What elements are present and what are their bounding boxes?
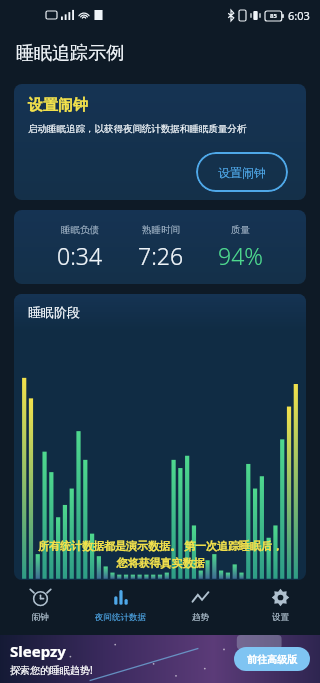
button[interactable]: Sleepzy: [0, 635, 320, 683]
staticText: 睡眠追踪示例: [16, 42, 124, 65]
staticText: 熟睡时间: [142, 224, 180, 236]
staticText: 所有统计数据都是演示数据。 第一次追踪睡眠后， 您将获得真实数据: [38, 538, 283, 570]
button[interactable]: 前往高级版: [234, 647, 310, 671]
staticText: 趋势: [192, 612, 209, 623]
staticText: 设置闹钟: [28, 96, 88, 115]
staticText: 质量: [231, 224, 250, 236]
button[interactable]: 闹钟: [0, 580, 80, 635]
staticText: Sleepzy: [10, 641, 66, 661]
staticText: 设置闹钟: [218, 165, 266, 180]
staticText: 探索您的睡眠趋势!: [10, 663, 93, 677]
staticText: 6:03: [288, 8, 310, 23]
staticText: 0:34: [57, 240, 103, 271]
staticText: 设置: [272, 612, 289, 623]
staticText: 85: [270, 12, 277, 20]
button[interactable]: 睡眠负债: [14, 210, 306, 284]
staticText: 睡眠阶段: [28, 304, 80, 320]
button[interactable]: 设置: [240, 580, 320, 635]
staticText: 94%: [218, 240, 263, 271]
button[interactable]: 睡眠阶段: [14, 294, 306, 580]
staticText: 夜间统计数据: [95, 612, 146, 623]
staticText: 7:26: [138, 240, 184, 271]
button[interactable]: 夜间统计数据: [80, 580, 160, 635]
staticText: 前往高级版: [247, 653, 297, 666]
staticText: 启动睡眠追踪，以获得夜间统计数据和睡眠质量分析: [28, 123, 247, 135]
staticText: 闹钟: [32, 612, 49, 623]
button[interactable]: 趋势: [160, 580, 240, 635]
button[interactable]: 设置闹钟: [196, 152, 288, 192]
staticText: 睡眠负债: [61, 224, 99, 236]
button[interactable]: 设置闹钟: [14, 84, 306, 200]
